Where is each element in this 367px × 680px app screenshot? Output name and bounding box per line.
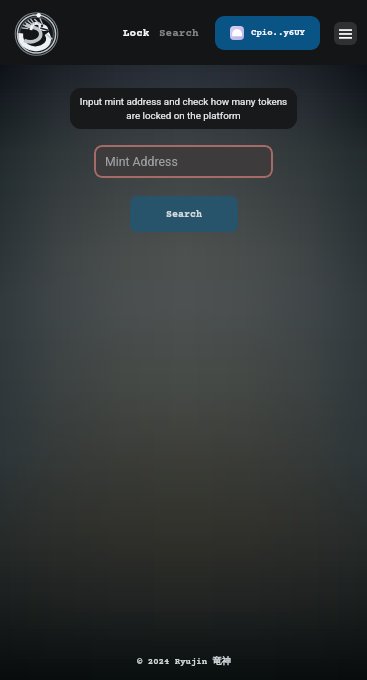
button[interactable]: Mint Address: [94, 145, 273, 178]
staticText: Input mint address and check how many to…: [76, 96, 291, 121]
button[interactable]: Ryujin home: [13, 10, 60, 57]
button[interactable]: Lock: [119, 19, 154, 47]
staticText: Mint Address: [105, 155, 178, 169]
staticText: Search: [166, 209, 202, 220]
staticText: Cpio..y6UY: [251, 28, 305, 38]
button[interactable]: Search: [130, 196, 238, 232]
staticText: © 2024 Ryujin 竜神: [137, 655, 231, 667]
button[interactable]: Cpio..y6UY: [215, 16, 320, 50]
button[interactable]: Search: [155, 19, 203, 47]
button[interactable]: Menu: [334, 22, 357, 45]
